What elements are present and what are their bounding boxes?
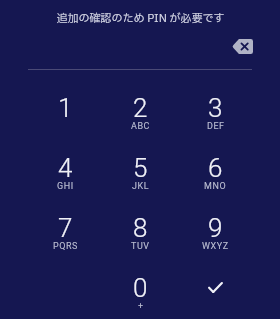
staticText: PQRS bbox=[53, 241, 78, 252]
button[interactable]: 8 bbox=[103, 202, 178, 262]
staticText: 9 bbox=[208, 213, 223, 243]
button[interactable]: 9 bbox=[178, 202, 253, 262]
button[interactable]: Confirm bbox=[178, 262, 253, 319]
button[interactable]: Backspace bbox=[226, 30, 259, 63]
button[interactable]: 7 bbox=[28, 202, 103, 262]
staticText: DEF bbox=[207, 121, 225, 132]
staticText: GHI bbox=[57, 181, 74, 192]
staticText: MNO bbox=[204, 181, 227, 192]
staticText: JKL bbox=[132, 181, 150, 192]
staticText: 8 bbox=[133, 213, 148, 243]
button[interactable]: 0 bbox=[103, 262, 178, 319]
staticText: 3 bbox=[208, 93, 223, 123]
staticText: 4 bbox=[58, 153, 73, 183]
button[interactable]: 5 bbox=[103, 142, 178, 202]
staticText: ABC bbox=[131, 121, 150, 132]
button[interactable]: 4 bbox=[28, 142, 103, 202]
staticText: 5 bbox=[133, 153, 148, 183]
staticText: + bbox=[138, 301, 144, 312]
staticText: TUV bbox=[131, 241, 150, 252]
staticText: 7 bbox=[58, 213, 73, 243]
button[interactable]: 1 bbox=[28, 82, 103, 142]
staticText: 0 bbox=[133, 273, 148, 303]
staticText: 6 bbox=[208, 153, 223, 183]
staticText: 2 bbox=[133, 93, 148, 123]
button[interactable]: 3 bbox=[178, 82, 253, 142]
staticText: WXYZ bbox=[202, 241, 229, 252]
button[interactable]: 2 bbox=[103, 82, 178, 142]
staticText: 1 bbox=[58, 93, 73, 123]
button[interactable]: 6 bbox=[178, 142, 253, 202]
staticText: 追加の確認のため PIN が必要です bbox=[56, 10, 225, 27]
